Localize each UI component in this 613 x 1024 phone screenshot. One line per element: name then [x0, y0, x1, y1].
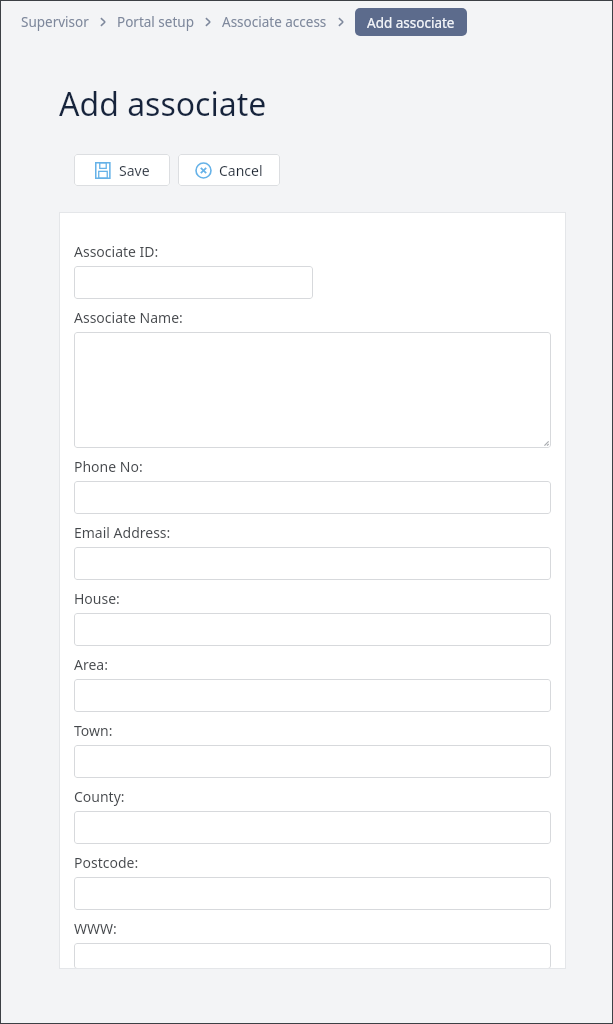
- staticText: Add associate: [59, 82, 267, 126]
- button[interactable]: Cancel: [178, 154, 280, 186]
- button[interactable]: [74, 745, 551, 778]
- staticText: Postcode:: [74, 853, 139, 872]
- button[interactable]: Associate access: [222, 13, 327, 31]
- button[interactable]: [74, 332, 551, 448]
- staticText: Email Address:: [74, 523, 171, 542]
- button[interactable]: [74, 481, 551, 514]
- button[interactable]: Add associate: [355, 8, 467, 36]
- staticText: House:: [74, 589, 120, 608]
- button[interactable]: Supervisor: [21, 13, 89, 31]
- staticText: WWW:: [74, 919, 117, 938]
- button[interactable]: [74, 877, 551, 910]
- button[interactable]: [74, 547, 551, 580]
- button[interactable]: Portal setup: [117, 13, 194, 31]
- button[interactable]: [74, 943, 551, 969]
- staticText: Cancel: [219, 161, 263, 180]
- button[interactable]: [74, 811, 551, 844]
- staticText: Supervisor: [21, 13, 89, 31]
- staticText: Save: [119, 161, 150, 180]
- staticText: Associate ID:: [74, 242, 159, 261]
- button[interactable]: [74, 266, 313, 299]
- button[interactable]: [74, 613, 551, 646]
- staticText: Portal setup: [117, 13, 194, 31]
- staticText: Phone No:: [74, 457, 143, 476]
- staticText: Associate Name:: [74, 308, 183, 327]
- staticText: Add associate: [367, 14, 455, 30]
- staticText: Area:: [74, 655, 108, 674]
- staticText: County:: [74, 787, 125, 806]
- staticText: Associate access: [222, 13, 327, 31]
- button[interactable]: [74, 679, 551, 712]
- button[interactable]: Save: [74, 154, 170, 186]
- staticText: Town:: [74, 721, 113, 740]
